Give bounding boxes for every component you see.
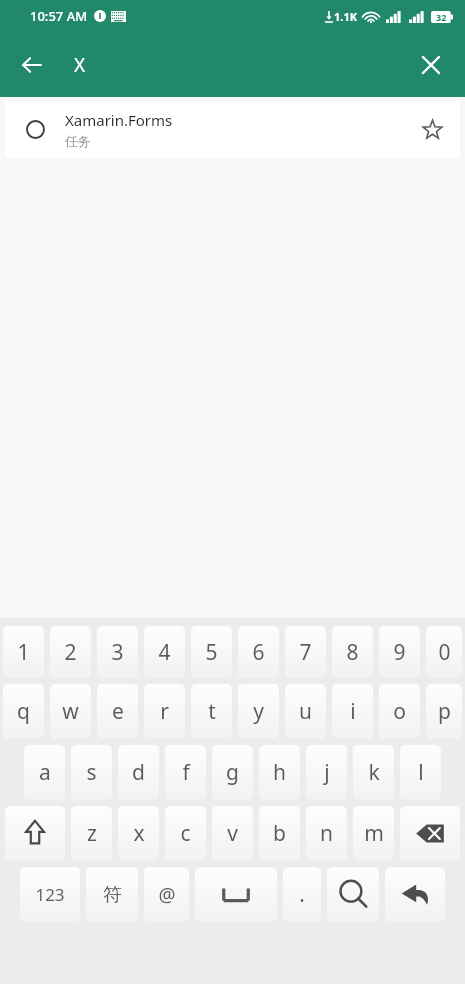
button[interactable]: Star [404, 101, 460, 158]
staticText: Xamarin.Forms [65, 110, 173, 130]
staticText: p [438, 697, 451, 726]
button[interactable]: h [259, 745, 300, 800]
staticText: k [368, 758, 380, 787]
staticText: q [17, 697, 30, 726]
staticText: 1 [17, 638, 30, 667]
staticText: 8 [346, 638, 359, 667]
staticText: a [39, 758, 51, 787]
staticText: s [86, 758, 97, 787]
button[interactable]: i [332, 684, 373, 739]
button[interactable]: 123 [20, 867, 80, 922]
staticText: y [253, 697, 264, 726]
staticText: 10:57 AM [30, 7, 88, 25]
button[interactable]: a [24, 745, 65, 800]
staticText: 4 [158, 638, 171, 667]
staticText: 9 [393, 638, 406, 667]
button[interactable]: 5 [191, 626, 232, 678]
staticText: l [418, 758, 424, 787]
button[interactable]: Shift [5, 806, 65, 861]
button[interactable]: f [165, 745, 206, 800]
staticText: 任务 [65, 133, 91, 149]
staticText: v [227, 819, 238, 848]
staticText: d [132, 758, 145, 787]
button[interactable]: z [71, 806, 112, 861]
button[interactable]: b [259, 806, 300, 861]
button[interactable]: u [285, 684, 326, 739]
staticText: 2 [64, 638, 77, 667]
button[interactable]: e [97, 684, 138, 739]
button[interactable]: w [50, 684, 91, 739]
button[interactable]: j [306, 745, 347, 800]
button[interactable]: s [71, 745, 112, 800]
button[interactable]: r [144, 684, 185, 739]
staticText: z [87, 819, 97, 848]
button[interactable]: 9 [379, 626, 420, 678]
button[interactable]: 0 [426, 626, 462, 678]
staticText: c [180, 819, 191, 848]
staticText: j [324, 758, 330, 787]
button[interactable]: g [212, 745, 253, 800]
button[interactable]: 符 [86, 867, 138, 922]
button[interactable]: 7 [285, 626, 326, 678]
button[interactable]: n [306, 806, 347, 861]
staticText: 123 [35, 883, 65, 906]
staticText: 1.1K [334, 9, 357, 24]
button[interactable]: m [353, 806, 394, 861]
button[interactable]: . [283, 867, 321, 922]
button[interactable]: v [212, 806, 253, 861]
button[interactable]: @ [144, 867, 189, 922]
button[interactable]: Enter [385, 867, 445, 922]
button[interactable]: 4 [144, 626, 185, 678]
staticText: u [299, 697, 312, 726]
button[interactable]: p [426, 684, 462, 739]
button[interactable]: Search [327, 867, 379, 922]
button[interactable]: t [191, 684, 232, 739]
button[interactable]: Back [10, 43, 54, 87]
staticText: 7 [299, 638, 312, 667]
staticText: X [74, 52, 86, 78]
staticText: 6 [252, 638, 265, 667]
button[interactable]: k [353, 745, 394, 800]
staticText: n [320, 819, 333, 848]
staticText: f [182, 758, 190, 787]
button[interactable]: Space [195, 867, 277, 922]
staticText: t [208, 697, 216, 726]
button[interactable]: Clear [409, 43, 453, 87]
staticText: e [112, 697, 124, 726]
button[interactable]: Backspace [400, 806, 460, 861]
button[interactable]: c [165, 806, 206, 861]
staticText: o [393, 697, 406, 726]
staticText: r [160, 697, 169, 726]
button[interactable]: l [400, 745, 441, 800]
staticText: 3 [111, 638, 124, 667]
staticText: 32 [436, 11, 447, 23]
button[interactable]: x [118, 806, 159, 861]
button[interactable]: 3 [97, 626, 138, 678]
button[interactable]: 6 [238, 626, 279, 678]
staticText: w [62, 697, 79, 726]
staticText: 符 [103, 883, 122, 907]
staticText: m [364, 819, 384, 848]
staticText: x [133, 819, 145, 848]
button[interactable]: d [118, 745, 159, 800]
staticText: . [299, 880, 305, 909]
staticText: @ [158, 882, 176, 908]
button[interactable]: 8 [332, 626, 373, 678]
button[interactable]: o [379, 684, 420, 739]
staticText: g [226, 758, 239, 787]
staticText: b [273, 819, 286, 848]
staticText: i [350, 697, 356, 726]
button[interactable]: 1 [3, 626, 44, 678]
button[interactable]: Mark complete [5, 101, 65, 158]
button[interactable]: q [3, 684, 44, 739]
button[interactable]: Mark complete [5, 101, 460, 158]
button[interactable]: 2 [50, 626, 91, 678]
staticText: 5 [205, 638, 218, 667]
button[interactable]: y [238, 684, 279, 739]
staticText: 0 [438, 638, 451, 667]
staticText: h [273, 758, 286, 787]
